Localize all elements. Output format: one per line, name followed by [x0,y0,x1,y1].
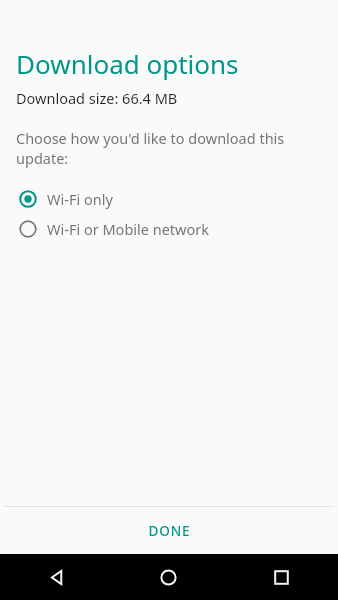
button[interactable]: Wi-Fi only [16,184,322,214]
button[interactable]: DONE [0,507,338,554]
staticText: Choose how you'd like to download this u… [16,128,322,168]
staticText: DONE [148,522,191,540]
staticText: Wi-Fi only [47,189,113,209]
staticText: Download size: 66.4 MB [16,88,178,108]
staticText: Wi-Fi or Mobile network [47,219,210,239]
button[interactable]: Back [0,554,112,600]
button[interactable]: Recent apps [225,554,338,600]
button[interactable]: Wi-Fi or Mobile network [16,214,322,244]
staticText: Download options [16,46,239,81]
button[interactable]: Home [112,554,225,600]
